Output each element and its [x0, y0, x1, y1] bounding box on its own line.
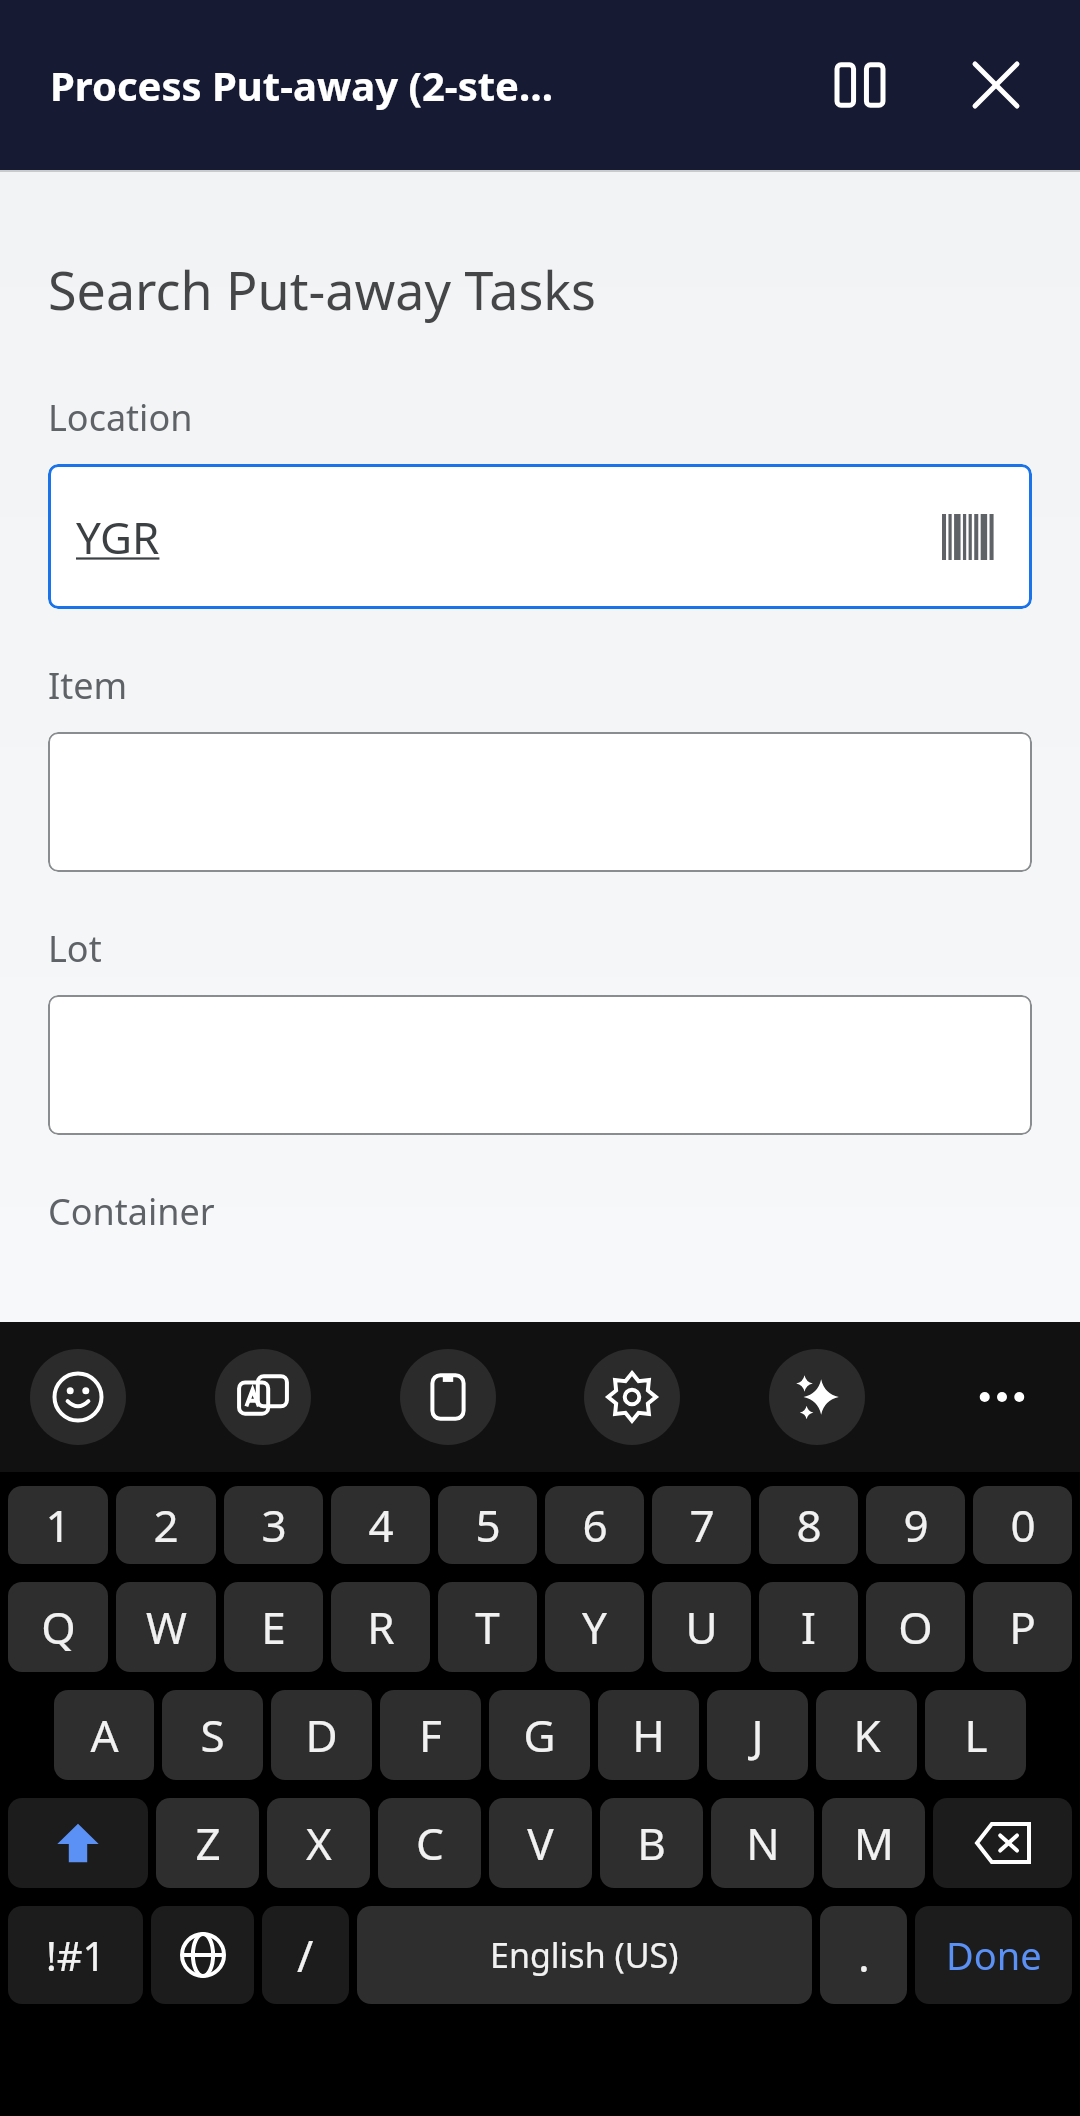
- button[interactable]: /: [262, 1906, 349, 2004]
- staticText: U: [685, 1597, 718, 1657]
- staticText: A: [90, 1705, 119, 1765]
- button[interactable]: 3: [224, 1486, 323, 1564]
- staticText: 8: [796, 1495, 822, 1555]
- staticText: Item: [48, 661, 128, 710]
- staticText: English (US): [490, 1932, 679, 1978]
- staticText: Z: [195, 1813, 221, 1873]
- button[interactable]: Emoji: [30, 1349, 126, 1445]
- staticText: L: [964, 1705, 988, 1765]
- button[interactable]: Q: [8, 1582, 108, 1672]
- button[interactable]: G: [489, 1690, 590, 1780]
- staticText: P: [1009, 1597, 1036, 1657]
- button[interactable]: Assistant: [769, 1349, 865, 1445]
- staticText: V: [527, 1813, 554, 1873]
- button[interactable]: M: [822, 1798, 925, 1888]
- button[interactable]: R: [331, 1582, 430, 1672]
- staticText: Location: [48, 393, 193, 442]
- button[interactable]: !#1: [8, 1906, 143, 2004]
- staticText: 1: [45, 1495, 71, 1555]
- staticText: X: [306, 1813, 332, 1873]
- staticText: Done: [946, 1929, 1042, 1981]
- button[interactable]: X: [267, 1798, 370, 1888]
- button[interactable]: Scan barcode: [934, 502, 1004, 572]
- button[interactable]: A: [54, 1690, 154, 1780]
- button[interactable]: YGR: [48, 464, 1032, 609]
- button[interactable]: More options: [954, 1349, 1050, 1445]
- button[interactable]: Settings: [584, 1349, 680, 1445]
- button[interactable]: C: [378, 1798, 481, 1888]
- button[interactable]: W: [116, 1582, 216, 1672]
- button[interactable]: English (US): [357, 1906, 812, 2004]
- button[interactable]: 1: [8, 1486, 108, 1564]
- staticText: Lot: [48, 924, 102, 973]
- staticText: Search Put-away Tasks: [48, 254, 596, 325]
- button[interactable]: F: [380, 1690, 481, 1780]
- button[interactable]: I: [759, 1582, 858, 1672]
- button[interactable]: Change language: [151, 1906, 254, 2004]
- staticText: Q: [41, 1597, 76, 1657]
- staticText: 7: [689, 1495, 715, 1555]
- button[interactable]: V: [489, 1798, 592, 1888]
- button[interactable]: H: [598, 1690, 699, 1780]
- staticText: .: [858, 1925, 870, 1985]
- staticText: 0: [1010, 1495, 1036, 1555]
- button[interactable]: S: [162, 1690, 263, 1780]
- button[interactable]: [48, 995, 1032, 1135]
- staticText: 4: [368, 1495, 394, 1555]
- button[interactable]: Clipboard: [400, 1349, 496, 1445]
- staticText: F: [419, 1705, 442, 1765]
- button[interactable]: O: [866, 1582, 965, 1672]
- staticText: /: [297, 1925, 314, 1985]
- staticText: K: [853, 1705, 881, 1765]
- staticText: M: [854, 1813, 894, 1873]
- button[interactable]: K: [816, 1690, 917, 1780]
- staticText: Y: [582, 1597, 607, 1657]
- button[interactable]: P: [973, 1582, 1072, 1672]
- button[interactable]: [48, 732, 1032, 872]
- staticText: E: [261, 1597, 286, 1657]
- staticText: O: [898, 1597, 933, 1657]
- staticText: I: [801, 1597, 816, 1657]
- button[interactable]: Split screen: [812, 37, 908, 133]
- staticText: !#1: [46, 1928, 106, 1982]
- staticText: H: [632, 1705, 665, 1765]
- button[interactable]: Done: [915, 1906, 1072, 2004]
- button[interactable]: 2: [116, 1486, 216, 1564]
- button[interactable]: B: [600, 1798, 703, 1888]
- button[interactable]: D: [271, 1690, 372, 1780]
- button[interactable]: 0: [973, 1486, 1072, 1564]
- staticText: Container: [48, 1187, 215, 1236]
- staticText: G: [523, 1705, 556, 1765]
- button[interactable]: Shift: [8, 1798, 148, 1888]
- button[interactable]: 8: [759, 1486, 858, 1564]
- staticText: 6: [582, 1495, 608, 1555]
- button[interactable]: Backspace: [933, 1798, 1072, 1888]
- staticText: 5: [475, 1495, 501, 1555]
- button[interactable]: 9: [866, 1486, 965, 1564]
- button[interactable]: Translate: [215, 1349, 311, 1445]
- button[interactable]: Z: [156, 1798, 259, 1888]
- staticText: S: [200, 1705, 225, 1765]
- staticText: D: [305, 1705, 338, 1765]
- staticText: Process Put-away (2-ste…: [50, 58, 554, 112]
- button[interactable]: Close: [948, 37, 1044, 133]
- staticText: R: [367, 1597, 395, 1657]
- staticText: C: [416, 1813, 444, 1873]
- button[interactable]: 7: [652, 1486, 751, 1564]
- button[interactable]: N: [711, 1798, 814, 1888]
- button[interactable]: J: [707, 1690, 808, 1780]
- staticText: B: [637, 1813, 666, 1873]
- staticText: 9: [903, 1495, 929, 1555]
- button[interactable]: L: [925, 1690, 1026, 1780]
- button[interactable]: Y: [545, 1582, 644, 1672]
- button[interactable]: 5: [438, 1486, 537, 1564]
- button[interactable]: T: [438, 1582, 537, 1672]
- staticText: W: [146, 1597, 187, 1657]
- staticText: 3: [261, 1495, 287, 1555]
- button[interactable]: 6: [545, 1486, 644, 1564]
- button[interactable]: .: [820, 1906, 907, 2004]
- button[interactable]: 4: [331, 1486, 430, 1564]
- staticText: 2: [153, 1495, 179, 1555]
- button[interactable]: U: [652, 1582, 751, 1672]
- button[interactable]: E: [224, 1582, 323, 1672]
